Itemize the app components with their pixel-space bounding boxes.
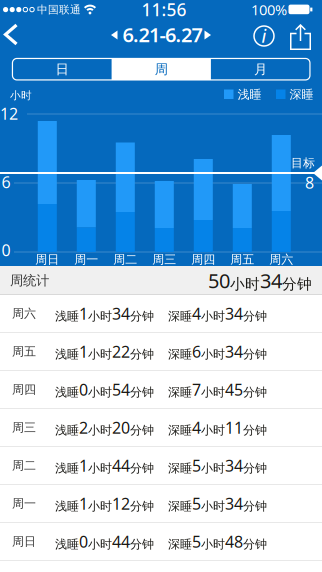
button[interactable]: 月 [211,59,310,80]
button[interactable]: 周四 [0,370,322,408]
staticText: 浅睡1小时34分钟 [55,303,154,324]
staticText: 目标 [291,156,315,170]
staticText: 周六 [12,306,36,321]
button[interactable] [290,24,311,50]
button[interactable]: 周 [112,59,211,80]
staticText: 浅睡1小时44分钟 [55,455,154,476]
staticText: 周日 [35,252,59,267]
button[interactable]: 周二 [0,446,322,484]
staticText: 浅睡0小时44分钟 [55,531,154,552]
button[interactable] [204,30,212,40]
staticText: 周一 [12,496,36,511]
button[interactable]: 周三 [0,408,322,446]
staticText: 6 [1,171,10,193]
staticText: 100% [251,0,287,19]
staticText: 周四 [12,382,36,397]
staticText: 深睡 [289,87,313,102]
staticText: 小时 [10,89,32,102]
button[interactable]: 周日 [0,522,322,560]
staticText: 深睡5小时48分钟 [168,531,267,552]
button[interactable]: 周六 [0,294,322,332]
staticText: 周二 [113,252,137,267]
staticText: 周四 [191,252,215,267]
staticText: 深睡5小时34分钟 [168,455,267,476]
staticText: 周五 [12,344,36,359]
staticText: 周一 [74,252,98,267]
staticText: 深睡4小时11分钟 [168,417,267,438]
staticText: 浅睡 [237,87,261,102]
staticText: 8 [305,172,314,193]
staticText: 周统计 [10,272,49,289]
staticText: 0 [1,239,10,261]
button[interactable] [1,22,23,46]
staticText: 深睡7小时45分钟 [168,379,267,400]
staticText: 周六 [269,252,293,267]
staticText: 月 [254,61,267,77]
staticText: 浅睡0小时54分钟 [55,379,154,400]
button[interactable] [110,30,118,40]
staticText: 深睡4小时34分钟 [168,303,267,324]
staticText: 深睡5小时34分钟 [168,493,267,514]
button[interactable]: 日 [12,59,111,80]
staticText: 6.21-6.27 [122,21,202,48]
staticText: 50小时34分钟 [208,267,312,294]
staticText: 12 [0,103,18,124]
staticText: 周五 [230,252,254,267]
staticText: 11:56 [141,0,186,21]
button[interactable]: 周五 [0,332,322,370]
staticText: 周日 [12,534,36,549]
staticText: i [261,24,266,47]
button[interactable]: 周一 [0,484,322,522]
staticText: 浅睡2小时20分钟 [55,417,154,438]
staticText: 周三 [152,252,176,267]
staticText: 中国联通 [37,3,81,16]
button[interactable]: i [253,25,275,47]
staticText: 周三 [12,420,36,435]
staticText: 周 [155,61,168,77]
staticText: 周二 [12,458,36,473]
staticText: 浅睡1小时12分钟 [55,493,154,514]
staticText: 日 [55,61,68,77]
staticText: 浅睡1小时22分钟 [55,341,154,362]
staticText: 深睡6小时34分钟 [168,341,267,362]
